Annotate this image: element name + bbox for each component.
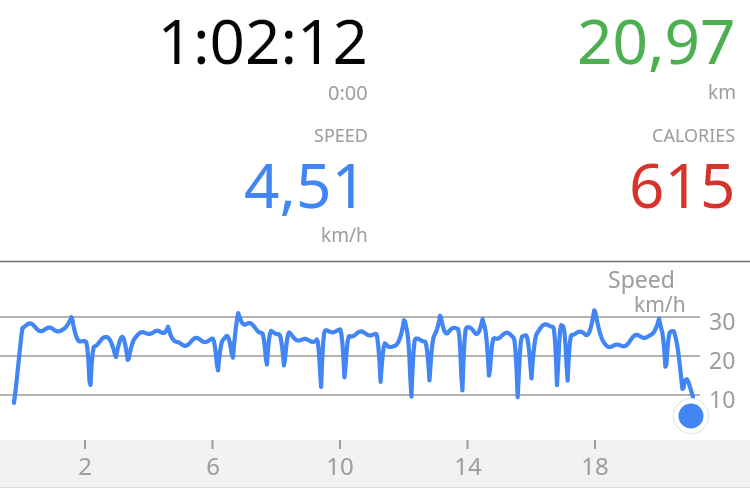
staticText: 6 (183, 449, 243, 482)
button[interactable]: CALORIES (375, 112, 750, 247)
staticText: km/h (634, 290, 686, 319)
staticText: 20,97 (577, 0, 736, 82)
staticText: 20 (709, 344, 736, 375)
staticText: 4,51 (244, 142, 368, 226)
staticText: 10 (709, 383, 736, 414)
staticText: 14 (438, 449, 498, 482)
staticText: km (708, 79, 736, 105)
button[interactable]: SPEED (0, 112, 375, 247)
button[interactable]: 20,97 (375, 0, 750, 112)
staticText: Speed (608, 263, 675, 294)
staticText: 2 (55, 449, 115, 482)
staticText: 30 (709, 305, 736, 336)
staticText: SPEED (314, 123, 368, 148)
staticText: km/h (321, 222, 368, 248)
button[interactable]: Speed chart (0, 261, 750, 440)
staticText: 1:02:12 (157, 0, 368, 82)
staticText: CALORIES (652, 123, 736, 148)
staticText: 10 (310, 449, 370, 482)
staticText: 615 (629, 142, 736, 226)
staticText: 0:00 (328, 79, 368, 106)
staticText: 18 (565, 449, 625, 482)
button[interactable]: 1:02:12 (0, 0, 375, 112)
